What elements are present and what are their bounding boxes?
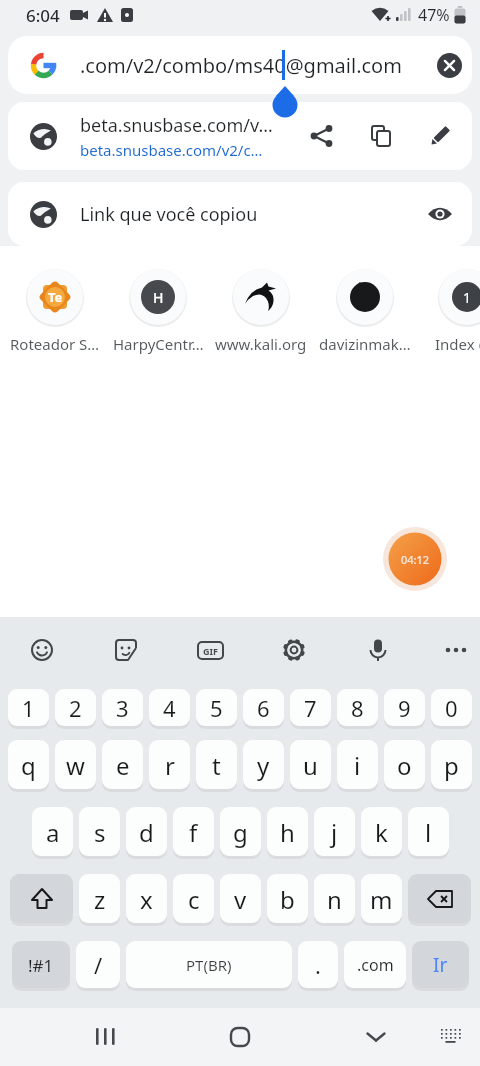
staticText: GIF [203,645,218,657]
button[interactable]: i [337,740,378,790]
button[interactable]: davizinmak… [313,269,417,354]
staticText: k [375,816,388,849]
button[interactable]: g [220,807,261,857]
button[interactable]: 8 [337,689,378,727]
staticText: e [116,749,130,782]
staticText: .com/v2/combo/ms40@gmail.com [80,52,402,79]
button[interactable]: d [126,807,167,857]
staticText: 7 [304,693,317,723]
button[interactable]: c [173,874,214,924]
staticText: 6 [257,693,270,723]
staticText: a [46,816,60,849]
button[interactable]: h [267,807,308,857]
button[interactable] [408,874,471,924]
button[interactable]: f [173,807,214,857]
button[interactable] [87,1017,127,1057]
button[interactable]: GIF [192,632,228,668]
staticText: t [212,749,221,782]
staticText: . [315,950,321,980]
button[interactable]: 1 [415,269,480,354]
button[interactable]: b [267,874,308,924]
button[interactable] [10,874,73,924]
button[interactable]: PT(BR) [126,941,292,989]
button[interactable]: Ir [412,941,469,989]
staticText: PT(BR) [186,955,232,975]
button[interactable] [24,632,60,668]
button[interactable]: o [384,740,425,790]
button[interactable] [367,122,395,150]
button[interactable]: k [361,807,402,857]
staticText: u [303,749,318,782]
button[interactable]: 9 [384,689,425,727]
button[interactable]: x [126,874,167,924]
button[interactable]: q [8,740,49,790]
button[interactable] [434,1022,470,1052]
button[interactable]: s [79,807,120,857]
button[interactable]: w [55,740,96,790]
button[interactable]: / [76,941,120,989]
staticText: Roteador S… [10,334,100,354]
button[interactable]: e [102,740,143,790]
button[interactable]: H [106,269,210,354]
button[interactable]: .com/v2/combo/ms40@gmail.com [8,36,472,94]
staticText: 9 [398,693,411,723]
button[interactable]: .com [344,941,406,989]
button[interactable] [220,1017,260,1057]
staticText: w [66,749,85,782]
button[interactable]: 2 [55,689,96,727]
staticText: h [280,816,295,849]
staticText: l [425,816,432,849]
button[interactable]: j [314,807,355,857]
button[interactable]: 1 [8,689,49,727]
button[interactable]: m [361,874,402,924]
button[interactable]: a [32,807,73,857]
staticText: r [165,749,175,782]
staticText: q [21,749,36,782]
staticText: s [94,816,106,849]
staticText: 6:04 [26,4,60,27]
staticText: Ir [433,952,448,978]
button[interactable]: beta.snusbase.com/v… [8,102,472,170]
button[interactable]: 4 [149,689,190,727]
button[interactable] [360,632,396,668]
staticText: o [397,749,412,782]
button[interactable] [356,1017,396,1057]
button[interactable]: t [196,740,237,790]
staticText: z [94,883,106,916]
button[interactable] [108,632,144,668]
button[interactable]: n [314,874,355,924]
staticText: 2 [69,693,82,723]
staticText: i [354,749,361,782]
button[interactable]: Te [3,269,107,354]
staticText: j [331,816,338,849]
button[interactable]: y [243,740,284,790]
button[interactable]: !#1 [12,941,70,989]
staticText: y [257,749,270,782]
staticText: 4 [163,693,176,723]
button[interactable] [308,122,336,150]
button[interactable] [276,632,312,668]
button[interactable]: Link que você copiou [8,182,472,246]
button[interactable]: r [149,740,190,790]
button[interactable]: v [220,874,261,924]
staticText: 47% [418,4,450,26]
button[interactable] [426,122,454,150]
button[interactable]: p [431,740,472,790]
button[interactable]: 0 [431,689,472,727]
staticText: Index d… [435,334,480,354]
button[interactable]: z [79,874,120,924]
button[interactable]: www.kali.org [209,269,313,354]
button[interactable]: 7 [290,689,331,727]
button[interactable]: 6 [243,689,284,727]
button[interactable]: 3 [102,689,143,727]
button[interactable] [437,53,462,78]
staticText: 1 [22,693,35,723]
staticText: 04:12 [401,552,430,567]
button[interactable]: . [298,941,338,989]
staticText: v [234,883,247,916]
button[interactable]: u [290,740,331,790]
button[interactable]: 5 [196,689,237,727]
button[interactable] [444,632,468,668]
button[interactable] [426,200,454,228]
button[interactable]: l [408,807,449,857]
